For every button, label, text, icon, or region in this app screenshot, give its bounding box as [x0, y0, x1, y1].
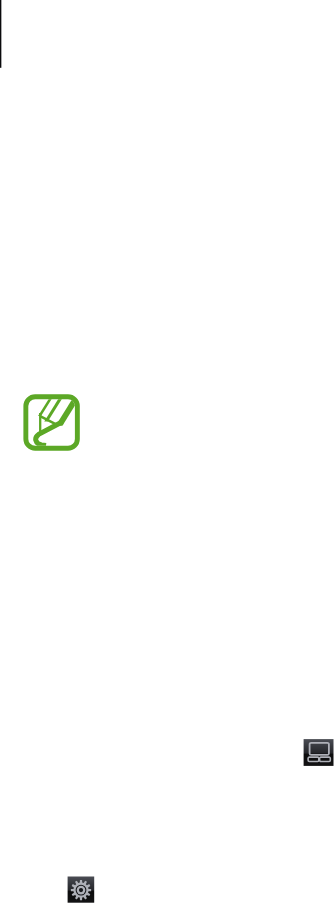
button[interactable]: Keyboard dock: [303, 738, 334, 767]
button[interactable]: Settings: [67, 876, 95, 903]
button[interactable]: S Note: [23, 394, 81, 452]
